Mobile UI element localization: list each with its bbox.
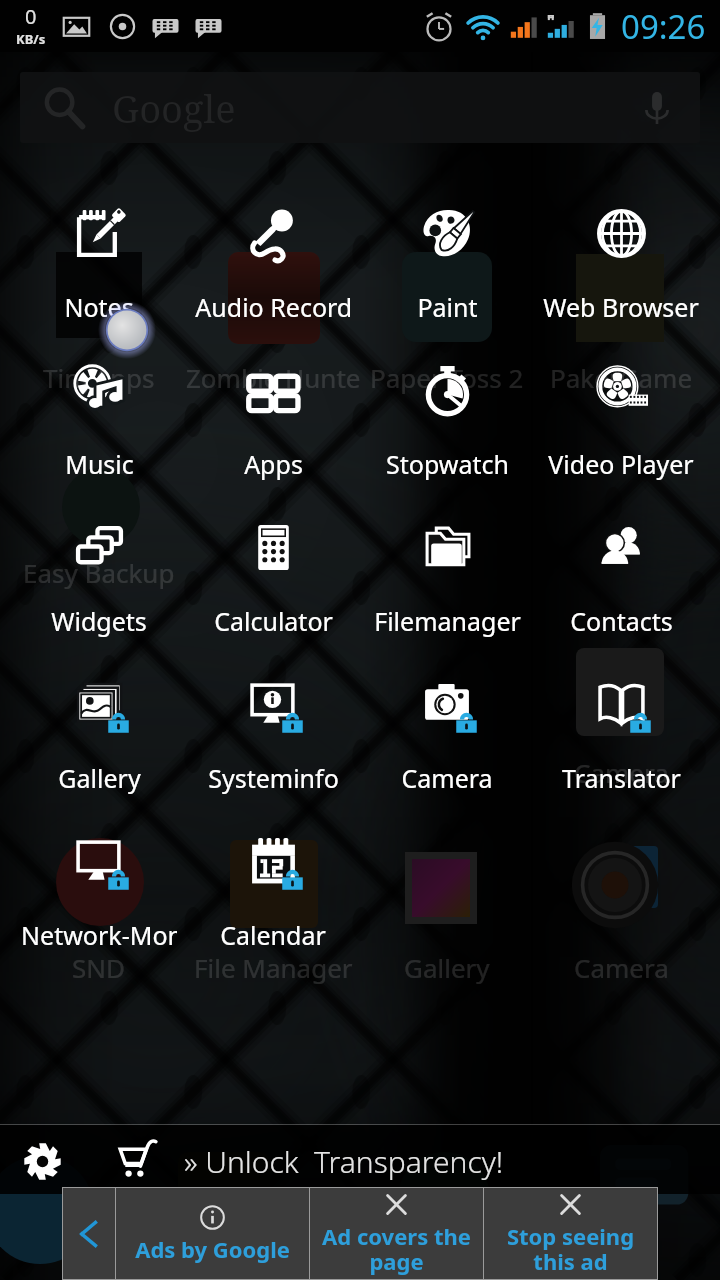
staticText: Translator xyxy=(562,761,681,795)
button[interactable]: Ads by Google xyxy=(116,1188,309,1279)
staticText: Ads by Google xyxy=(135,1234,290,1264)
button[interactable]: Translator xyxy=(534,654,708,794)
staticText: Stop seeing this ad xyxy=(490,1221,651,1276)
staticText: Calculator xyxy=(214,604,333,638)
staticText: Filemanager xyxy=(374,604,521,638)
staticText: Stopwatch xyxy=(386,447,509,481)
staticText: TinyApps xyxy=(43,360,155,395)
button[interactable]: Systeminfo xyxy=(186,654,360,794)
staticText: Apps xyxy=(244,447,303,481)
button[interactable]: Stop seeing this ad xyxy=(484,1188,657,1279)
button[interactable]: Ad covers the page xyxy=(310,1188,483,1279)
staticText: Music xyxy=(65,447,134,481)
button[interactable]: Stopwatch xyxy=(360,340,534,480)
staticText: PakerGame xyxy=(550,360,693,395)
button[interactable]: Gallery xyxy=(12,654,186,794)
button[interactable]: Back xyxy=(63,1188,115,1279)
button[interactable]: Network-Monitor xyxy=(12,811,186,951)
button[interactable]: Music xyxy=(12,340,186,480)
staticText: Contacts xyxy=(570,604,673,638)
button[interactable]: Contacts xyxy=(534,497,708,637)
staticText: Easy Backup xyxy=(23,555,175,590)
button[interactable]: Widgets xyxy=(12,497,186,637)
staticText: Ad covers the page xyxy=(316,1221,477,1276)
staticText: Widgets xyxy=(51,604,147,638)
button[interactable]: Filemanager xyxy=(360,497,534,637)
staticText: Gallery xyxy=(404,950,490,985)
staticText: 0 xyxy=(25,3,37,30)
staticText: SND xyxy=(72,950,126,985)
staticText: Paper Toss 2 xyxy=(370,360,524,395)
button[interactable]: Paint xyxy=(360,183,534,323)
button[interactable]: Google xyxy=(20,72,700,143)
staticText: Camera xyxy=(401,761,493,795)
other: Shop xyxy=(116,1140,158,1182)
staticText: Paint xyxy=(417,290,478,324)
staticText: Network-Monitor xyxy=(21,918,177,952)
staticText: Web Browser xyxy=(543,290,699,324)
button[interactable]: Web Browser xyxy=(534,183,708,323)
button[interactable]: Apps xyxy=(186,340,360,480)
staticText: Video Player xyxy=(548,447,694,481)
staticText: 09:26 xyxy=(621,4,706,49)
staticText: Notes xyxy=(64,290,134,324)
staticText: Audio Recorder xyxy=(195,290,351,324)
button[interactable]: Audio Recorder xyxy=(186,183,360,323)
staticText: Systeminfo xyxy=(208,761,339,795)
button[interactable]: Camera xyxy=(360,654,534,794)
staticText: » Unlock Transparency! xyxy=(184,1141,504,1182)
staticText: Camera xyxy=(574,755,669,790)
staticText: Camera xyxy=(574,950,669,985)
button[interactable]: Notes xyxy=(12,183,186,323)
staticText: File Manager xyxy=(194,950,353,985)
button[interactable]: Calculator xyxy=(186,497,360,637)
button[interactable]: Calendar xyxy=(186,811,360,951)
button[interactable]: Video Player xyxy=(534,340,708,480)
staticText: Calendar xyxy=(220,918,326,952)
staticText: KB/s xyxy=(16,30,46,48)
staticText: Google xyxy=(112,82,236,134)
button[interactable]: Settings xyxy=(24,1132,504,1190)
other: Settings xyxy=(24,1143,61,1180)
staticText: Zombie Hunter xyxy=(186,360,360,395)
staticText: Gallery xyxy=(58,761,141,795)
other: Voice search xyxy=(638,89,676,127)
